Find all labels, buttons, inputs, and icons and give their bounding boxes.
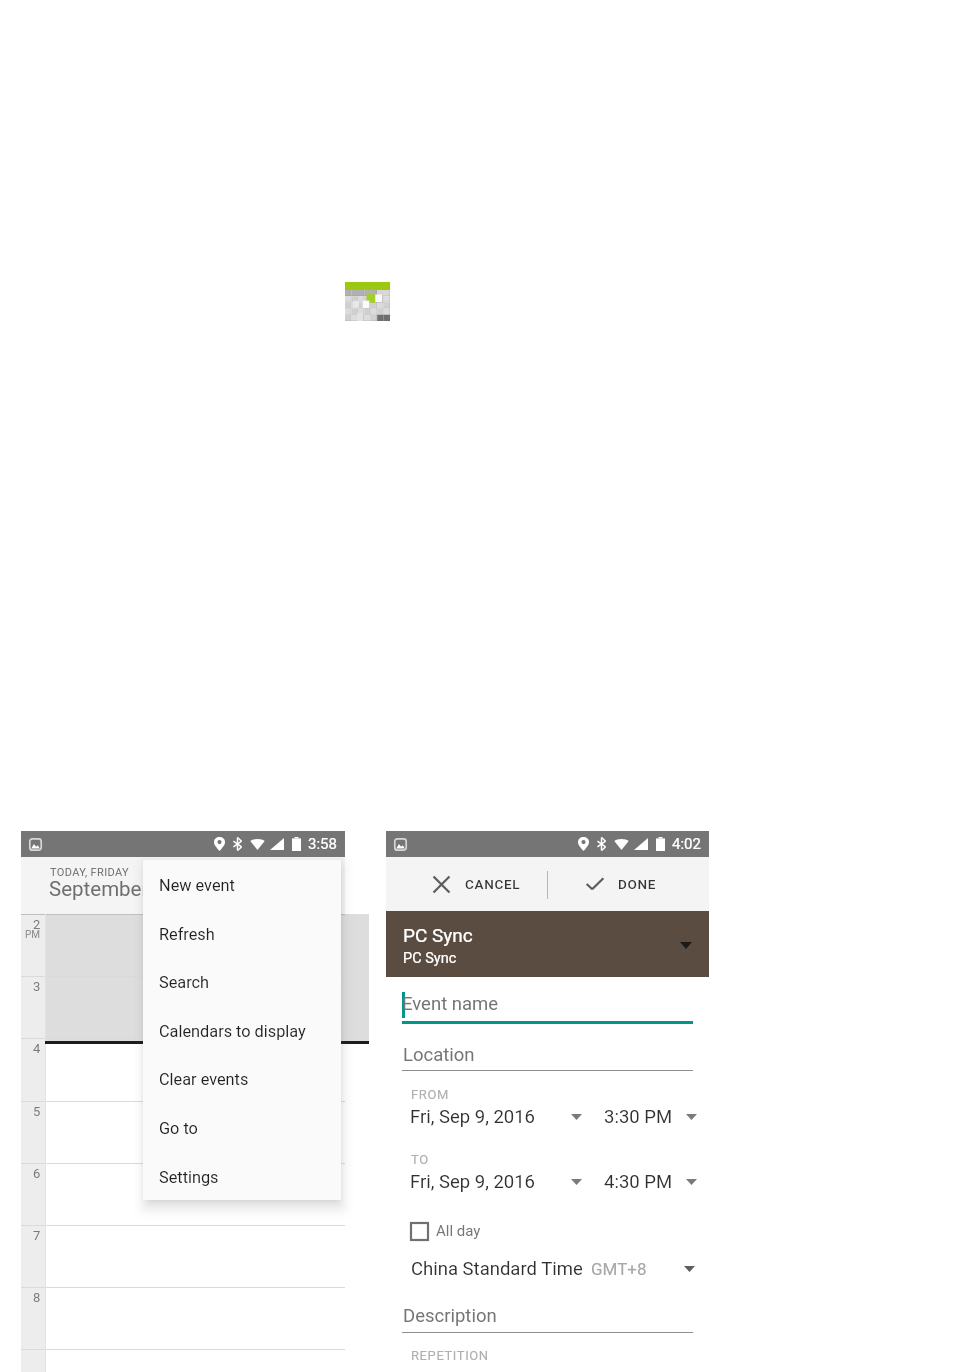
staticText: 6 [33,1166,41,1181]
staticText: 3:30 PM [604,1106,673,1128]
button[interactable]: Settings [143,1153,341,1200]
button[interactable]: Search [143,958,341,1006]
button[interactable]: Pick date [410,1106,582,1128]
staticText: 4:30 PM [604,1171,673,1193]
staticText: Go to [159,1119,198,1138]
button[interactable]: Pick time [591,1171,697,1193]
button[interactable]: Pick date [410,1171,582,1193]
staticText: PC Sync [403,950,457,967]
staticText: FROM [411,1087,449,1102]
staticText: REPETITION [411,1348,489,1363]
staticText: TODAY, FRIDAY [50,866,129,879]
button[interactable]: Event name field [402,988,693,1024]
staticText: GMT+8 [591,1259,647,1279]
staticText: 3:58 [308,835,337,853]
staticText: Description [403,1305,497,1327]
staticText: 4:02 [672,835,701,853]
button[interactable]: Location field [402,1039,693,1071]
button[interactable]: Description field [402,1300,693,1333]
button[interactable]: CANCEL [386,857,547,911]
staticText: 2 [33,917,41,932]
button[interactable]: Clear events [143,1055,341,1103]
staticText: PC Sync [403,924,473,946]
staticText: Event name [402,993,499,1015]
staticText: Settings [159,1168,219,1187]
staticText: TO [411,1152,429,1167]
staticText: September 9 [49,877,166,901]
button[interactable]: DONE [548,857,709,911]
button[interactable]: Calendars to display [143,1007,341,1055]
staticText: Clear events [159,1070,249,1089]
staticText: Fri, Sep 9, 2016 [410,1106,535,1128]
staticText: Refresh [159,925,215,944]
button[interactable]: New event [143,861,341,909]
other: Screenshot [394,838,407,851]
staticText: 7 [33,1228,41,1243]
other: Screenshot [29,838,42,851]
staticText: China Standard Time [411,1258,583,1280]
staticText: New event [159,876,235,895]
staticText: CANCEL [465,876,521,892]
staticText: DONE [618,876,657,892]
staticText: 8 [33,1290,41,1305]
staticText: PM [25,929,41,941]
button[interactable]: Pick time [591,1106,697,1128]
button[interactable]: Time zone: China Standard Time GMT+8 [411,1257,695,1281]
staticText: 3 [33,979,41,994]
staticText: Calendars to display [159,1022,306,1041]
button[interactable]: All day [410,1220,510,1242]
button[interactable]: Choose calendar: PC Sync [386,911,709,977]
staticText: Location [403,1044,475,1066]
staticText: Fri, Sep 9, 2016 [410,1171,535,1193]
staticText: Search [159,973,210,992]
staticText: 4 [33,1041,41,1056]
button[interactable]: Refresh [143,910,341,958]
button[interactable]: Go to [143,1104,341,1152]
staticText: 5 [33,1104,41,1119]
staticText: All day [436,1222,481,1240]
